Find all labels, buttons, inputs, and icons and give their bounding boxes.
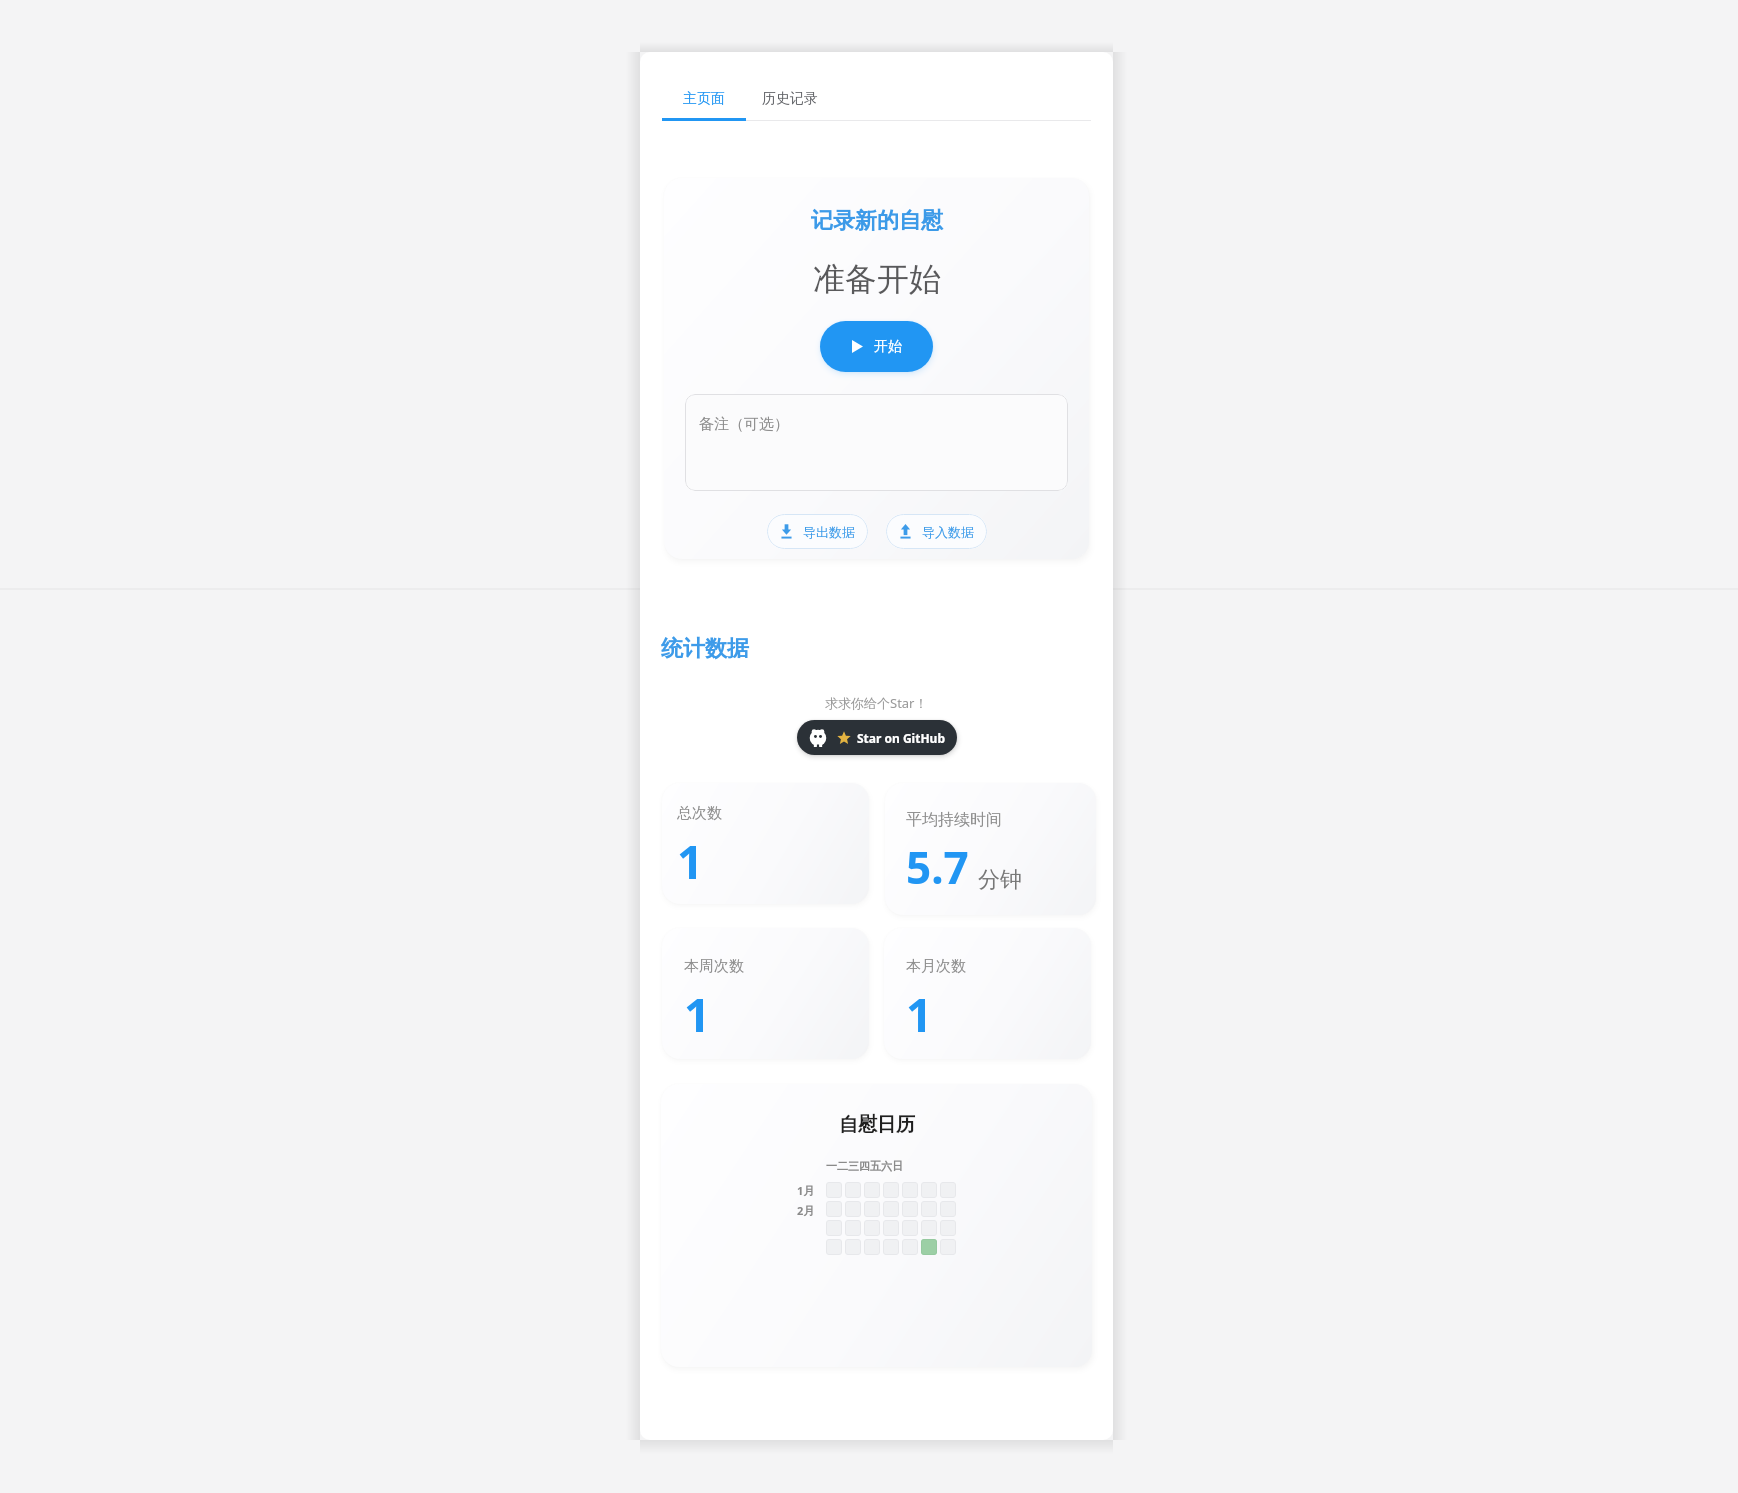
staticText: 导入数据 xyxy=(922,524,974,540)
button[interactable]: 开始 xyxy=(820,321,933,372)
staticText: 分钟 xyxy=(978,866,1022,894)
staticText: 1月 xyxy=(797,1183,815,1198)
staticText: 备注（可选） xyxy=(699,415,789,434)
staticText: 统计数据 xyxy=(661,635,749,663)
button[interactable]: 总次数 xyxy=(662,783,869,904)
staticText: 本周次数 xyxy=(684,957,744,976)
button[interactable]: 导入数据 xyxy=(886,514,987,549)
staticText: 四 xyxy=(859,1159,870,1173)
button[interactable]: 本月次数 xyxy=(884,928,1091,1059)
staticText: 本月次数 xyxy=(906,957,966,976)
staticText: 一 xyxy=(826,1159,837,1173)
staticText: Star on GitHub xyxy=(857,730,945,746)
button[interactable]: 备注（可选） xyxy=(685,394,1068,491)
staticText: 三 xyxy=(848,1159,859,1173)
staticText: 记录新的自慰 xyxy=(811,207,943,235)
staticText: 准备开始 xyxy=(813,259,941,299)
staticText: 日 xyxy=(892,1159,903,1173)
staticText: 开始 xyxy=(874,338,902,356)
staticText: 1 xyxy=(906,983,933,1046)
staticText: 五 xyxy=(870,1159,881,1173)
staticText: 5.7 xyxy=(906,837,969,897)
staticText: 导出数据 xyxy=(803,524,855,540)
staticText: 六 xyxy=(881,1159,892,1173)
button[interactable]: 本周次数 xyxy=(662,928,869,1059)
button[interactable]: 导出数据 xyxy=(767,514,868,549)
button[interactable]: 平均持续时间 xyxy=(885,783,1096,915)
staticText: 平均持续时间 xyxy=(906,810,1002,830)
staticText: 总次数 xyxy=(677,804,722,823)
button[interactable]: 主页面 xyxy=(662,52,746,121)
staticText: 1 xyxy=(684,983,711,1046)
staticText: 历史记录 xyxy=(762,90,818,108)
button[interactable]: 历史记录 xyxy=(746,52,834,121)
staticText: 1 xyxy=(677,830,704,893)
staticText: 求求你给个Star！ xyxy=(825,694,928,712)
staticText: 2月 xyxy=(797,1203,815,1218)
button[interactable]: Star on GitHub xyxy=(797,720,957,755)
staticText: 自慰日历 xyxy=(839,1113,915,1137)
staticText: 主页面 xyxy=(683,90,725,108)
staticText: 二 xyxy=(837,1159,848,1173)
